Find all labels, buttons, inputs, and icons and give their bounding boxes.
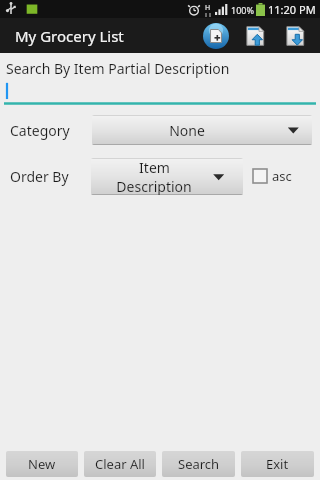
button[interactable]: None xyxy=(92,115,312,145)
button[interactable]: New item xyxy=(196,18,236,53)
staticText: Category xyxy=(10,121,70,140)
button[interactable]: Exit xyxy=(241,451,314,477)
staticText: Clear All xyxy=(95,455,145,473)
staticText: Search xyxy=(178,455,220,473)
button[interactable]: Clear All xyxy=(84,451,156,477)
button[interactable]: Search xyxy=(162,451,235,477)
button[interactable]: Import xyxy=(276,18,316,53)
button[interactable]: asc xyxy=(253,167,292,185)
button[interactable]: New xyxy=(6,451,78,477)
staticText: Search By Item Partial Description xyxy=(6,59,230,78)
staticText: Description xyxy=(116,177,192,195)
staticText: New xyxy=(28,455,56,473)
button[interactable]: Export xyxy=(236,18,276,53)
staticText: Item xyxy=(139,158,170,177)
staticText: 100% xyxy=(231,4,254,16)
staticText: Order By xyxy=(10,167,69,186)
button[interactable]: Item xyxy=(91,158,243,195)
staticText: 11:20 PM xyxy=(268,2,316,17)
staticText: My Grocery List xyxy=(15,26,124,46)
staticText: asc xyxy=(272,167,292,185)
staticText: H xyxy=(205,3,211,13)
staticText: Exit xyxy=(266,455,289,473)
staticText: None xyxy=(169,121,205,140)
